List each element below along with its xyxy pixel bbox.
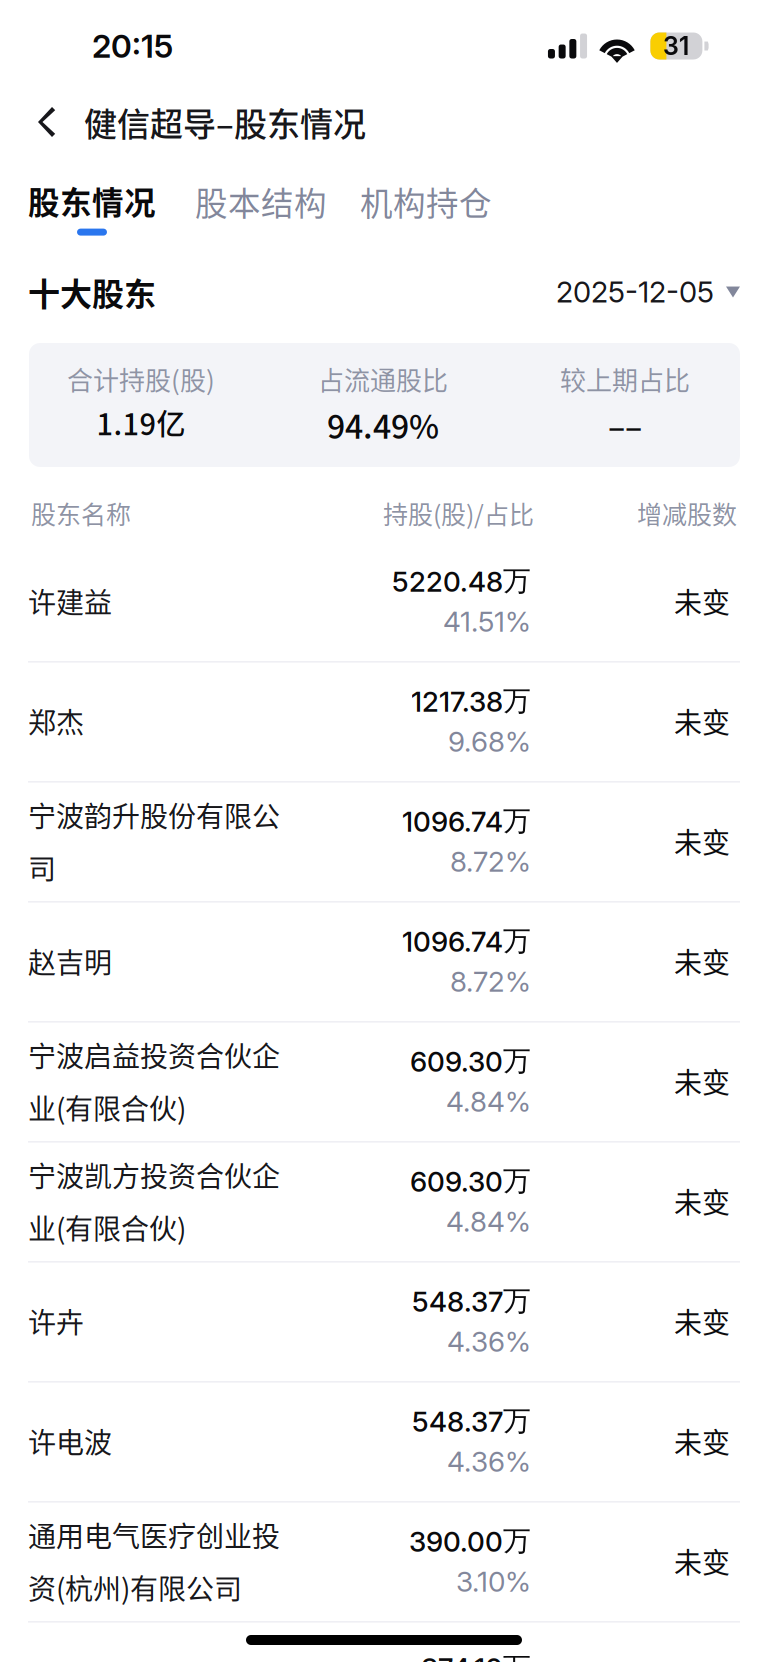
button[interactable]: 机构持仓 bbox=[327, 178, 492, 225]
staticText: 占流通股比 bbox=[318, 360, 448, 398]
staticText: 3.10% bbox=[456, 1565, 531, 1598]
staticText: 5220.48万 bbox=[392, 563, 531, 598]
staticText: 2025-12-05 bbox=[556, 274, 714, 310]
staticText: 较上期占比 bbox=[560, 360, 690, 398]
staticText: 宁波凯方投资合伙企业(有限合伙) bbox=[28, 1154, 280, 1248]
button[interactable]: 许电波 bbox=[28, 1381, 740, 1501]
staticText: 通用电气医疗创业投资(杭州)有限公司 bbox=[28, 1514, 280, 1608]
staticText: 未变 bbox=[674, 1181, 730, 1221]
staticText: 未变 bbox=[674, 1541, 730, 1581]
staticText: 31 bbox=[663, 31, 689, 61]
staticText: 609.30万 bbox=[410, 1163, 531, 1198]
staticText: 未变 bbox=[674, 1301, 730, 1341]
staticText: 增减股数 bbox=[637, 495, 737, 531]
staticText: 持股(股)/占比 bbox=[383, 495, 534, 531]
button[interactable]: 2025-12-05 bbox=[556, 274, 740, 310]
staticText: 1.19亿 bbox=[96, 402, 185, 444]
staticText: 1096.74万 bbox=[402, 923, 531, 958]
staticText: 机构持仓 bbox=[360, 178, 492, 225]
staticText: 390.00万 bbox=[409, 1523, 531, 1558]
staticText: 548.37万 bbox=[412, 1283, 531, 1318]
staticText: 未变 bbox=[674, 1061, 730, 1101]
staticText: 股东情况 bbox=[28, 178, 156, 224]
button[interactable]: 股东情况 bbox=[28, 178, 156, 236]
button[interactable]: 宁波启益投资合伙企业(有限合伙) bbox=[28, 1021, 740, 1141]
staticText: 609.30万 bbox=[410, 1043, 531, 1078]
staticText: 宁波韵升股份有限公司 bbox=[28, 794, 280, 888]
staticText: 20:15 bbox=[92, 27, 173, 65]
staticText: 未变 bbox=[674, 821, 730, 861]
staticText: 41.51% bbox=[443, 605, 531, 638]
staticText: 1096.74万 bbox=[402, 803, 531, 838]
staticText: 合计持股(股) bbox=[67, 360, 215, 398]
staticText: 许电波 bbox=[28, 1421, 112, 1461]
button[interactable]: 通用电气医疗创业投资(杭州)有限公司 bbox=[28, 1501, 740, 1621]
staticText: 4.84% bbox=[446, 1205, 531, 1238]
staticText: 548.37万 bbox=[412, 1403, 531, 1438]
button[interactable]: 赵吉明 bbox=[28, 901, 740, 1021]
button[interactable]: 许建益 bbox=[28, 541, 740, 661]
staticText: 许建益 bbox=[28, 581, 112, 621]
button[interactable]: 宁波韵升股份有限公司 bbox=[28, 781, 740, 901]
staticText: 健信超导–股东情况 bbox=[84, 98, 366, 146]
staticText: 十大股东 bbox=[28, 269, 156, 315]
button[interactable]: 许卉 bbox=[28, 1261, 740, 1381]
button[interactable]: Back bbox=[16, 91, 74, 153]
staticText: 股本结构 bbox=[195, 178, 327, 225]
staticText: 4.36% bbox=[447, 1445, 531, 1478]
staticText: 赵吉明 bbox=[28, 941, 112, 981]
staticText: 股东名称 bbox=[31, 495, 131, 531]
staticText: 374.10万 bbox=[421, 1650, 531, 1662]
staticText: –– bbox=[608, 402, 642, 448]
staticText: 郑杰 bbox=[28, 701, 84, 741]
button[interactable]: 宁波凯方投资合伙企业(有限合伙) bbox=[28, 1141, 740, 1261]
staticText: 94.49% bbox=[327, 402, 439, 448]
staticText: 9.68% bbox=[448, 725, 531, 758]
staticText: 4.36% bbox=[447, 1325, 531, 1358]
staticText: 未变 bbox=[674, 581, 730, 621]
staticText: 8.72% bbox=[450, 845, 531, 878]
button[interactable]: 股本结构 bbox=[156, 178, 327, 225]
staticText: 宁波启益投资合伙企业(有限合伙) bbox=[28, 1034, 280, 1128]
staticText: 4.84% bbox=[446, 1085, 531, 1118]
staticText: 8.72% bbox=[450, 965, 531, 998]
staticText: 1217.38万 bbox=[411, 683, 531, 718]
staticText: 未变 bbox=[674, 1421, 730, 1461]
staticText: 未变 bbox=[674, 701, 730, 741]
staticText: 未变 bbox=[674, 941, 730, 981]
button[interactable]: 郑杰 bbox=[28, 661, 740, 781]
staticText: 许卉 bbox=[28, 1301, 84, 1341]
